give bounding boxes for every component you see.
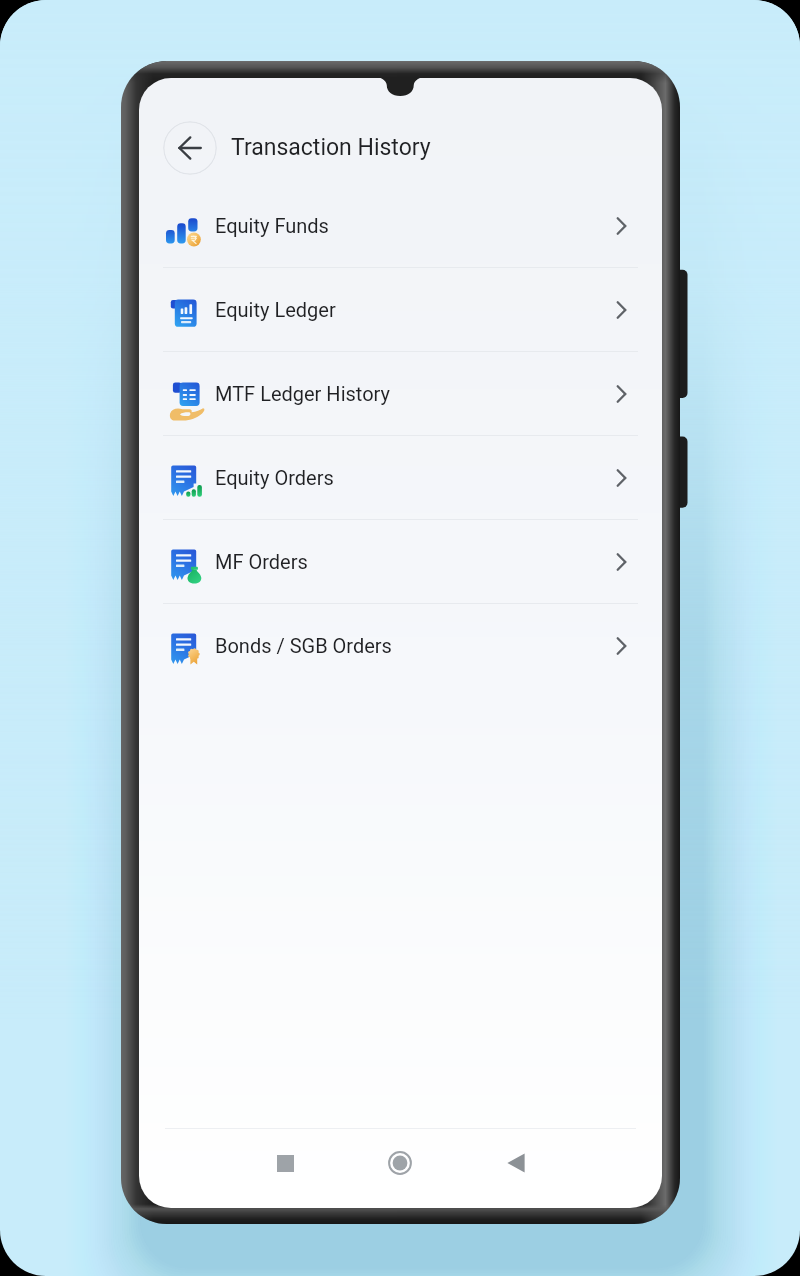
button[interactable]: Bonds / SGB Orders: [139, 604, 662, 687]
staticText: MF Orders: [215, 550, 308, 573]
button[interactable]: MF Orders: [139, 520, 662, 603]
staticText: Equity Funds: [215, 214, 329, 237]
button[interactable]: Equity Funds: [139, 184, 662, 267]
staticText: Equity Orders: [215, 466, 334, 489]
button[interactable]: Recent apps: [263, 1141, 307, 1185]
button[interactable]: MTF Ledger History: [139, 352, 662, 435]
staticText: Equity Ledger: [215, 298, 336, 321]
button[interactable]: Back: [494, 1141, 538, 1185]
button[interactable]: Equity Orders: [139, 436, 662, 519]
staticText: Bonds / SGB Orders: [215, 634, 392, 657]
staticText: MTF Ledger History: [215, 382, 390, 405]
button[interactable]: Home: [378, 1141, 422, 1185]
button[interactable]: Back: [163, 121, 217, 175]
staticText: Transaction History: [231, 134, 431, 161]
button[interactable]: Equity Ledger: [139, 268, 662, 351]
